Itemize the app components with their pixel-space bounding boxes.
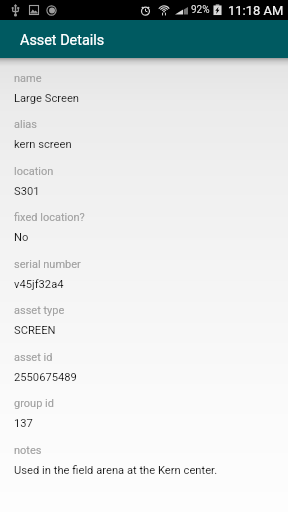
staticText: fixed location?	[14, 211, 85, 224]
button[interactable]: notes	[14, 444, 274, 477]
staticText: location	[14, 165, 54, 178]
staticText: Asset Details	[20, 32, 105, 49]
button[interactable]: serial number	[14, 258, 274, 291]
staticText: S301	[14, 185, 40, 198]
button[interactable]: location	[14, 165, 274, 198]
staticText: name	[14, 72, 42, 85]
staticText: v45jf32a4	[14, 278, 64, 291]
staticText: asset id	[14, 351, 53, 364]
other: Alarm set	[140, 5, 151, 16]
other: Notification	[46, 5, 57, 16]
staticText: alias	[14, 118, 37, 131]
button[interactable]: asset type	[14, 304, 274, 337]
staticText: serial number	[14, 258, 81, 271]
staticText: 11:18 AM	[228, 3, 284, 18]
other: Battery charging, 92 percent	[213, 4, 222, 16]
button[interactable]: name	[14, 72, 274, 105]
button[interactable]: asset id	[14, 351, 274, 384]
staticText: Large Screen	[14, 92, 80, 105]
other: Screenshot captured	[29, 5, 39, 15]
staticText: group id	[14, 397, 54, 410]
staticText: No	[14, 231, 29, 244]
staticText: 92%	[191, 4, 210, 16]
other: Wi-Fi	[158, 5, 170, 16]
staticText: SCREEN	[14, 324, 56, 337]
button[interactable]: alias	[14, 118, 274, 151]
button[interactable]: fixed location?	[14, 211, 274, 244]
staticText: Used in the field arena at the Kern cent…	[14, 464, 218, 477]
staticText: notes	[14, 444, 42, 457]
staticText: 2550675489	[14, 371, 77, 384]
staticText: kern screen	[14, 138, 72, 151]
button[interactable]: Asset Details	[0, 20, 288, 58]
other: USB connected	[12, 4, 19, 17]
staticText: 137	[14, 417, 33, 430]
other: Mobile signal	[175, 5, 188, 16]
staticText: asset type	[14, 304, 65, 317]
button[interactable]: group id	[14, 397, 274, 430]
